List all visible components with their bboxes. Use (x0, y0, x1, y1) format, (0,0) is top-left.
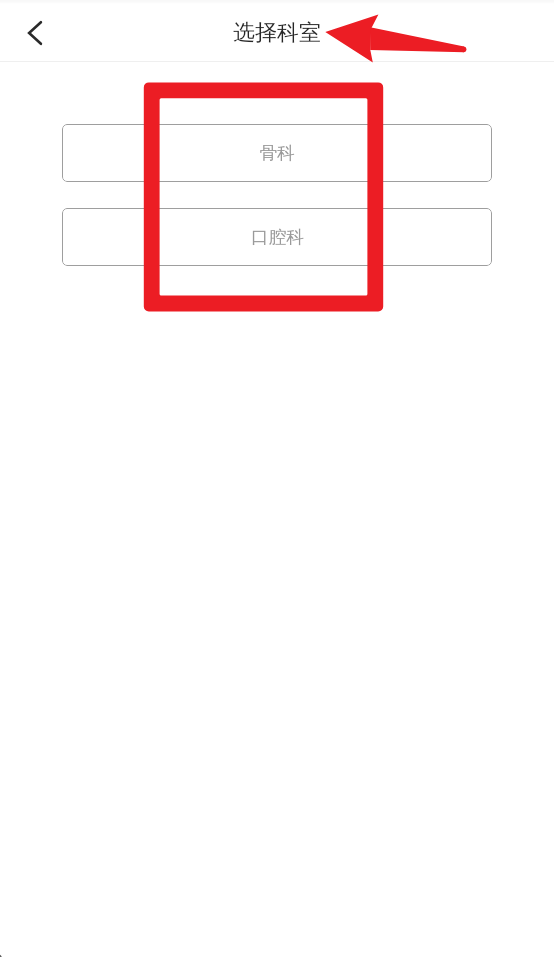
staticText: 选择科室 (233, 19, 321, 47)
button[interactable]: 骨科 (62, 124, 492, 182)
button[interactable]: 口腔科 (62, 208, 492, 266)
staticText: 口腔科 (251, 226, 304, 248)
staticText: 骨科 (259, 142, 295, 164)
button[interactable]: Back (13, 11, 57, 55)
